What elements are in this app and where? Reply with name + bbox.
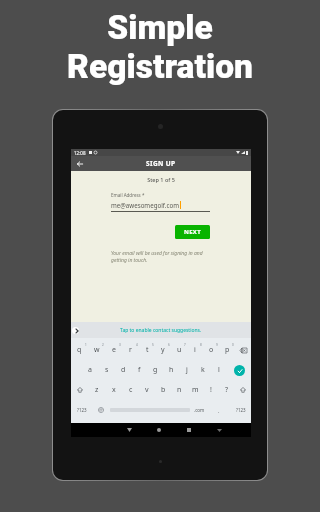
button[interactable]: ! (203, 380, 219, 400)
staticText: ! (210, 385, 212, 395)
staticText: d (121, 365, 126, 375)
button[interactable]: l (211, 360, 227, 380)
staticText: t (146, 345, 149, 355)
staticText: i (194, 345, 196, 355)
staticText: m (192, 385, 199, 395)
button[interactable]: Backspace (235, 340, 251, 360)
staticText: @ (99, 407, 103, 413)
button[interactable]: n (171, 380, 187, 400)
button[interactable]: f (131, 360, 147, 380)
button[interactable]: u (171, 340, 187, 360)
button[interactable]: a (81, 360, 98, 380)
button[interactable]: .com (191, 400, 207, 420)
button[interactable]: Back (114, 423, 144, 437)
staticText: 2 (102, 343, 104, 347)
staticText: l (218, 365, 220, 375)
button[interactable]: t (139, 340, 155, 360)
button[interactable]: Shift (235, 380, 251, 400)
button[interactable]: y (155, 340, 171, 360)
button[interactable]: s (98, 360, 115, 380)
button[interactable]: j (179, 360, 195, 380)
staticText: 4 (136, 343, 138, 347)
staticText: 9 (216, 343, 218, 347)
button[interactable]: Space (109, 400, 191, 420)
button[interactable]: Enter (227, 360, 251, 380)
staticText: 7 (184, 343, 186, 347)
staticText: 3 (119, 343, 121, 347)
staticText: me@awesomegolf.com (111, 201, 179, 209)
staticText: y (161, 345, 165, 355)
button[interactable]: o (203, 340, 219, 360)
button[interactable]: x (105, 380, 122, 400)
button[interactable]: ?123 (230, 400, 251, 420)
button[interactable]: NEXT (175, 225, 210, 239)
button[interactable]: c (122, 380, 139, 400)
staticText: v (145, 385, 149, 395)
button[interactable]: Back (73, 157, 86, 170)
staticText: s (105, 365, 109, 375)
staticText: 5 (152, 343, 154, 347)
staticText: e (112, 345, 116, 355)
button[interactable]: i (187, 340, 203, 360)
staticText: ?123 (236, 407, 246, 413)
staticText: Simple (107, 8, 213, 47)
button[interactable]: Shift (71, 380, 88, 400)
staticText: Tap to enable contact suggestions. (120, 327, 202, 334)
button[interactable]: m (187, 380, 203, 400)
button[interactable]: h (163, 360, 179, 380)
staticText: r (129, 345, 132, 355)
staticText: q (77, 345, 82, 355)
button[interactable]: v (139, 380, 155, 400)
button[interactable]: Hide keyboard (204, 423, 234, 437)
staticText: k (201, 365, 205, 375)
button[interactable]: ?123 (71, 400, 92, 420)
button[interactable]: d (115, 360, 131, 380)
button[interactable]: g (147, 360, 163, 380)
staticText: 8 (200, 343, 202, 347)
staticText: u (177, 345, 182, 355)
staticText: n (177, 385, 182, 395)
staticText: 0 (232, 343, 234, 347)
staticText: ?123 (77, 407, 87, 413)
staticText: z (95, 385, 99, 395)
staticText: j (186, 365, 188, 375)
staticText: Your email will be used for signing in a… (111, 250, 210, 264)
button[interactable]: At sign (92, 400, 109, 420)
staticText: 1 (85, 343, 87, 347)
staticText: b (161, 385, 166, 395)
staticText: 12:08 (74, 150, 86, 156)
staticText: a (88, 365, 92, 375)
button[interactable]: ? (219, 380, 235, 400)
staticText: . (218, 407, 220, 414)
staticText: h (169, 365, 174, 375)
button[interactable]: q (71, 340, 88, 360)
button[interactable]: r (122, 340, 139, 360)
staticText: w (94, 345, 100, 355)
staticText: c (129, 385, 133, 395)
staticText: 6 (168, 343, 170, 347)
button[interactable]: Recent apps (174, 423, 204, 437)
staticText: SIGN UP (146, 159, 176, 168)
button[interactable]: Tap to enable contact suggestions. (71, 322, 251, 338)
button[interactable]: z (88, 380, 105, 400)
button[interactable]: b (155, 380, 171, 400)
staticText: g (153, 365, 158, 375)
button[interactable]: p (219, 340, 235, 360)
staticText: .com (194, 407, 205, 413)
button[interactable]: w (88, 340, 105, 360)
staticText: Email Address * (111, 192, 145, 198)
staticText: p (225, 345, 230, 355)
staticText: Registration (67, 47, 253, 86)
staticText: Step 1 of 5 (71, 176, 251, 183)
staticText: NEXT (184, 228, 201, 236)
staticText: o (209, 345, 214, 355)
button[interactable]: Home (144, 423, 174, 437)
staticText: f (138, 365, 141, 375)
staticText: x (112, 385, 116, 395)
button[interactable]: e (105, 340, 122, 360)
button[interactable]: Expand suggestions (72, 327, 79, 334)
staticText: ? (225, 385, 229, 395)
button[interactable]: k (195, 360, 211, 380)
